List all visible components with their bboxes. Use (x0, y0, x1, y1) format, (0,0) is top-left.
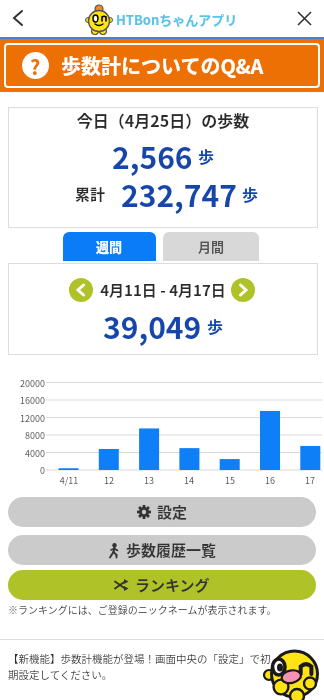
staticText: 16000 (0, 394, 45, 407)
staticText: 歩 (207, 314, 224, 337)
staticText: ランキング (135, 574, 210, 596)
staticText: 17 (295, 474, 324, 487)
staticText: 8000 (0, 429, 45, 442)
button[interactable]: 月間 (163, 232, 259, 261)
button[interactable]: ? (0, 39, 324, 92)
staticText: 月間 (198, 237, 225, 256)
staticText: ※ランキングには、ご登録のニックネームが表示されます。 (8, 602, 277, 616)
staticText: HTBonちゃんアプリ (116, 10, 238, 29)
staticText: 16 (255, 474, 285, 487)
staticText: 12 (94, 474, 124, 487)
button[interactable] (231, 278, 255, 302)
staticText: 232,747 (121, 172, 237, 215)
staticText: 週間 (96, 237, 123, 256)
staticText: 累計 (75, 183, 106, 205)
staticText: 4/11 (54, 474, 84, 487)
staticText: 13 (134, 474, 164, 487)
staticText: 今日（4月25日）の歩数 (8, 108, 318, 131)
button[interactable] (290, 4, 318, 32)
staticText: 【新機能】歩数計機能が登場！画面中央の「設定」で初期設定してください。 (8, 651, 276, 682)
staticText: 4月11日 - 4月17日 (8, 279, 318, 301)
button[interactable]: 週間 (63, 232, 156, 261)
button[interactable] (4, 4, 32, 32)
staticText: 2,566 (112, 134, 193, 177)
button[interactable] (69, 278, 93, 302)
staticText: 歩 (242, 182, 259, 205)
staticText: 歩数計についてのQ&A (61, 51, 264, 80)
staticText: 歩 (198, 144, 215, 167)
button[interactable]: ランキング (8, 570, 316, 600)
button[interactable]: 歩数履歴一覧 (8, 535, 316, 565)
staticText: 15 (215, 474, 245, 487)
staticText: ? (30, 52, 41, 79)
staticText: 20000 (0, 377, 45, 390)
staticText: 12000 (0, 412, 45, 425)
staticText: 設定 (157, 501, 188, 523)
staticText: 4000 (0, 447, 45, 460)
button[interactable]: 設定 (8, 497, 316, 527)
staticText: 39,049 (103, 304, 202, 347)
staticText: 14 (174, 474, 204, 487)
staticText: 0 (0, 464, 45, 477)
staticText: 歩数履歴一覧 (126, 539, 217, 561)
